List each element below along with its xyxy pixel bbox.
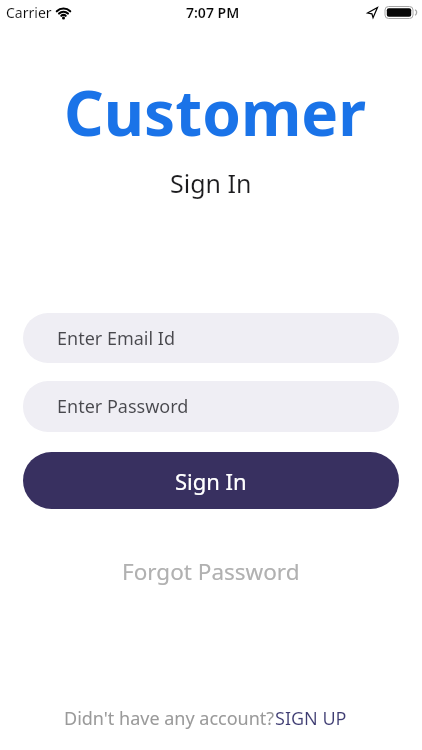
staticText: Sign In [175, 466, 247, 496]
button[interactable]: SIGN UP [275, 706, 347, 731]
button[interactable]: Sign In [23, 452, 399, 509]
button[interactable]: Enter Password [23, 381, 399, 432]
staticText: Enter Password [57, 394, 189, 419]
staticText: Customer [64, 70, 367, 154]
button[interactable]: Enter Email Id [23, 313, 399, 363]
staticText: 7:07 PM [186, 3, 240, 22]
staticText: Didn't have any account? [64, 706, 275, 731]
staticText: Enter Email Id [57, 326, 175, 351]
staticText: Carrier [6, 3, 52, 22]
staticText: Sign In [170, 166, 252, 200]
button[interactable]: Forgot Password [122, 556, 300, 587]
